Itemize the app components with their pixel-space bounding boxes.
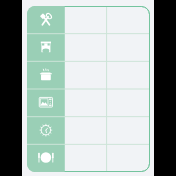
button[interactable]: Prepare (27, 6, 150, 34)
button[interactable]: Bake (27, 90, 150, 118)
button[interactable]: Serve (27, 146, 150, 172)
button[interactable]: Weigh ingredients (27, 34, 150, 62)
button[interactable]: Cook (27, 62, 150, 90)
button[interactable]: Timer (27, 118, 150, 146)
